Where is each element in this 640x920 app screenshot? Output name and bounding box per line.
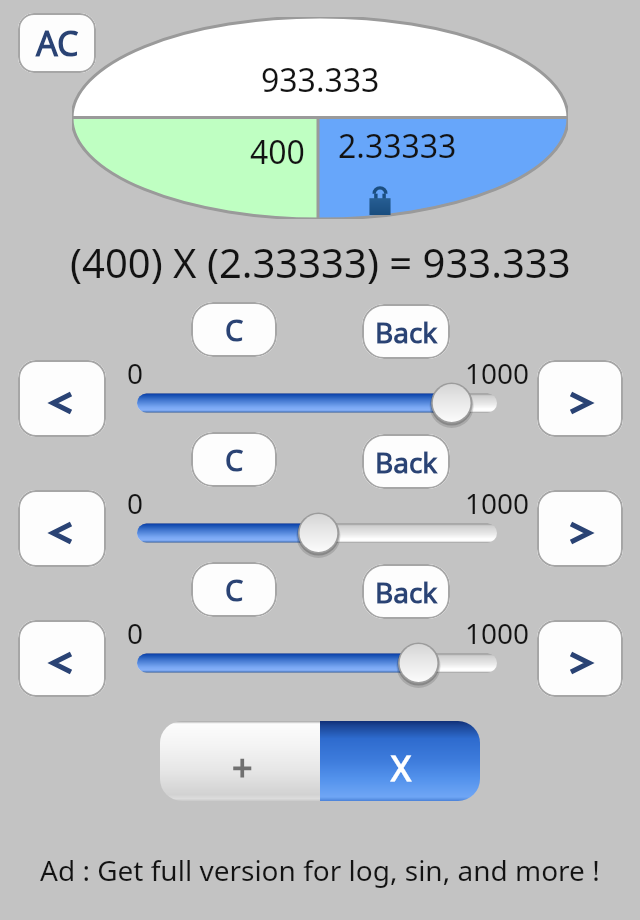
staticText: 1000: [465, 484, 530, 522]
button[interactable]: Back: [362, 304, 450, 359]
staticText: 2.33333: [338, 124, 457, 168]
staticText: C: [225, 570, 244, 609]
staticText: Back: [375, 573, 438, 611]
button[interactable]: Back: [362, 434, 450, 489]
button[interactable]: Back: [362, 564, 450, 619]
staticText: 400: [250, 130, 305, 174]
staticText: Back: [375, 313, 438, 351]
button[interactable]: Value slider: [127, 641, 510, 685]
button[interactable]: Increase: [537, 490, 623, 567]
button[interactable]: Decrease: [18, 360, 106, 437]
button[interactable]: Increase: [537, 360, 623, 437]
button[interactable]: Value slider: [127, 511, 510, 555]
button[interactable]: Increase: [537, 620, 623, 697]
staticText: 1000: [465, 354, 530, 392]
button[interactable]: +: [160, 721, 320, 801]
button[interactable]: X: [320, 721, 480, 801]
staticText: Back: [375, 443, 438, 481]
button[interactable]: 400: [72, 119, 318, 219]
staticText: AC: [36, 20, 79, 66]
button[interactable]: Decrease: [18, 490, 106, 567]
button[interactable]: C: [191, 302, 277, 357]
staticText: (400) X (2.33333) = 933.333: [70, 235, 571, 289]
button[interactable]: AC: [18, 13, 96, 73]
button[interactable]: C: [191, 562, 277, 617]
staticText: +: [232, 743, 253, 792]
button[interactable]: Value slider: [127, 381, 510, 425]
staticText: 933.333: [261, 58, 380, 102]
staticText: 0: [127, 354, 144, 392]
staticText: X: [391, 745, 411, 791]
staticText: 1000: [465, 614, 530, 652]
staticText: C: [225, 440, 244, 479]
button[interactable]: C: [191, 432, 277, 487]
staticText: C: [225, 310, 244, 349]
button[interactable]: 933.333: [72, 17, 568, 117]
button[interactable]: Decrease: [18, 620, 106, 697]
staticText: 0: [127, 614, 144, 652]
button[interactable]: 2.33333: [318, 119, 568, 219]
staticText: 0: [127, 484, 144, 522]
staticText: Ad : Get full version for log, sin, and …: [40, 851, 600, 889]
other: Locked: [369, 187, 391, 215]
